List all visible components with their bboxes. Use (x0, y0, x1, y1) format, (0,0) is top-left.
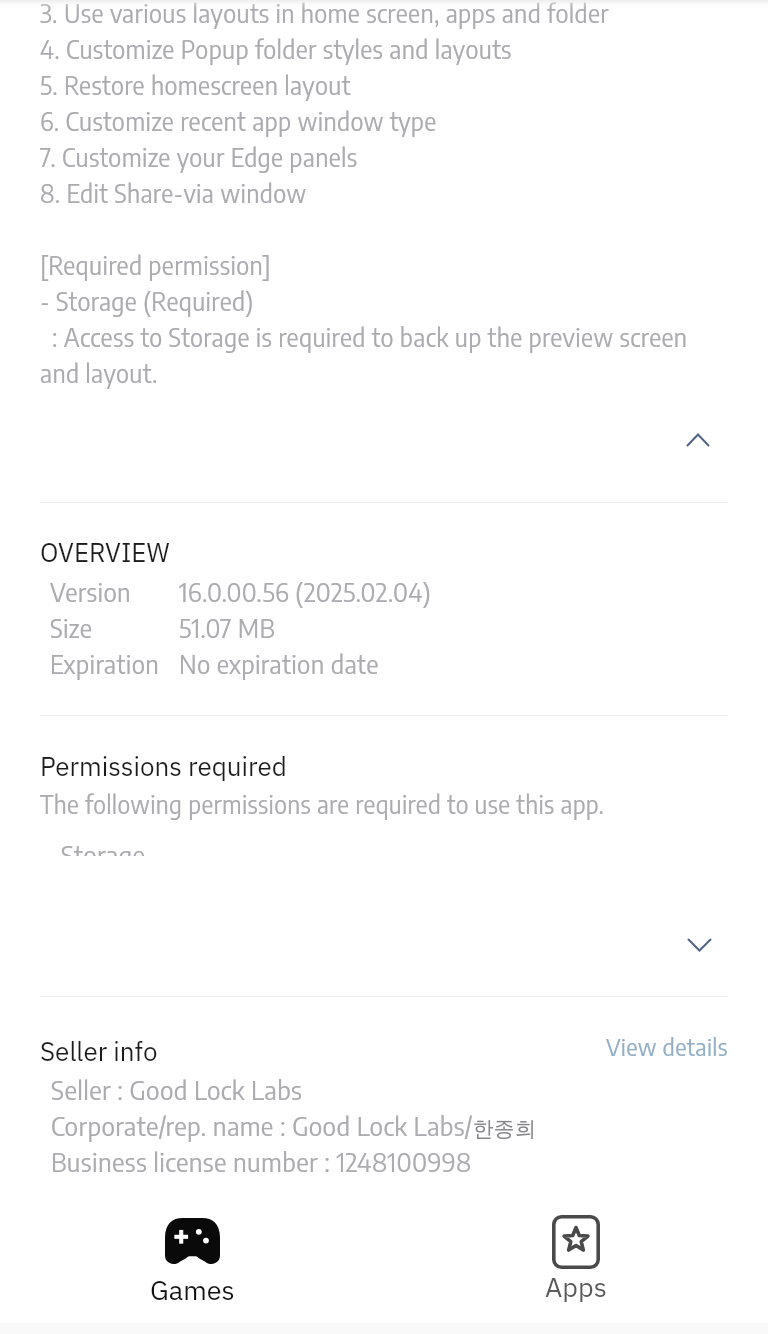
button[interactable]: Collapse description (40, 405, 728, 465)
button[interactable]: View details (594, 1020, 740, 1073)
staticText: 8. Edit Share-via window (40, 177, 307, 208)
button[interactable]: Apps (384, 1210, 768, 1320)
button[interactable]: Games (0, 1210, 384, 1320)
staticText: Seller info (40, 1034, 158, 1068)
staticText: Permissions required (40, 749, 287, 783)
staticText: 7. Customize your Edge panels (40, 141, 358, 172)
staticText: 51.07 MB (179, 612, 276, 644)
staticText: Version (50, 576, 131, 608)
staticText: and layout. (40, 357, 158, 388)
staticText: : Access to Storage is required to back … (40, 321, 688, 352)
staticText: Storage (61, 838, 146, 856)
staticText: 6. Customize recent app window type (40, 105, 437, 136)
button[interactable]: Expand permissions (40, 920, 729, 980)
staticText: 16.0.00.56 (2025.02.04) (179, 576, 432, 608)
staticText: - Storage (Required) (40, 285, 254, 316)
staticText: 5. Restore homescreen layout (40, 69, 351, 100)
staticText: No expiration date (179, 648, 379, 680)
staticText: Expiration (50, 648, 160, 680)
staticText: [Required permission] (40, 249, 272, 280)
staticText: Corporate/rep. name : Good Lock Labs/한종희 (51, 1109, 537, 1142)
staticText: 3. Use various layouts in home screen, a… (40, 0, 609, 28)
staticText: OVERVIEW (40, 535, 170, 569)
staticText: View details (606, 1032, 728, 1061)
staticText: Business license number : 1248100998 (51, 1145, 472, 1177)
staticText: 4. Customize Popup folder styles and lay… (40, 33, 512, 64)
staticText: The following permissions are required t… (40, 789, 605, 820)
staticText: Size (50, 612, 93, 644)
staticText: Apps (545, 1269, 607, 1304)
staticText: Games (150, 1272, 235, 1307)
staticText: Seller : Good Lock Labs (51, 1073, 303, 1105)
